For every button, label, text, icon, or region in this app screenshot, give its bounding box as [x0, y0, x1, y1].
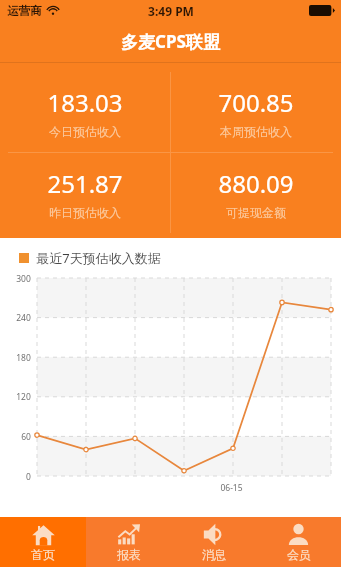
staticText: 运营商	[7, 4, 42, 18]
staticText: 183.03	[47, 86, 123, 119]
button[interactable]: Member	[256, 517, 341, 567]
staticText: 会员	[287, 547, 311, 562]
other: Member	[287, 523, 310, 546]
staticText: 251.87	[47, 167, 123, 200]
staticText: 首页	[31, 547, 55, 562]
button[interactable]: Reports	[86, 517, 171, 567]
staticText: 06-15	[220, 482, 243, 494]
staticText: 昨日预估收入	[49, 205, 121, 220]
staticText: 700.85	[218, 86, 294, 119]
other: Reports	[117, 523, 140, 546]
other: Wi-Fi signal	[46, 3, 60, 17]
staticText: 180	[16, 352, 31, 364]
other: Home	[32, 523, 55, 546]
button[interactable]: 251.87	[0, 153, 170, 233]
button[interactable]: Home	[0, 517, 86, 567]
staticText: 120	[16, 391, 31, 403]
button[interactable]: 最近7天预估收入数据	[19, 249, 161, 267]
staticText: 最近7天预估收入数据	[36, 249, 161, 267]
button[interactable]: 700.85	[171, 72, 341, 152]
staticText: 60	[21, 431, 31, 443]
other: Messages	[202, 523, 225, 546]
button[interactable]: Messages	[171, 517, 256, 567]
button[interactable]: 880.09	[171, 153, 341, 233]
staticText: 240	[16, 312, 31, 324]
staticText: 880.09	[218, 167, 294, 200]
staticText: 300	[16, 273, 31, 285]
other: Battery full	[309, 5, 335, 16]
button[interactable]: 183.03	[0, 72, 170, 152]
staticText: 可提现金额	[226, 205, 286, 220]
staticText: 多麦CPS联盟	[121, 30, 220, 53]
staticText: 3:49 PM	[148, 3, 194, 19]
staticText: 消息	[202, 547, 226, 562]
staticText: 0	[26, 471, 31, 483]
staticText: 报表	[117, 547, 141, 562]
staticText: 本周预估收入	[220, 124, 292, 139]
staticText: 今日预估收入	[49, 124, 121, 139]
